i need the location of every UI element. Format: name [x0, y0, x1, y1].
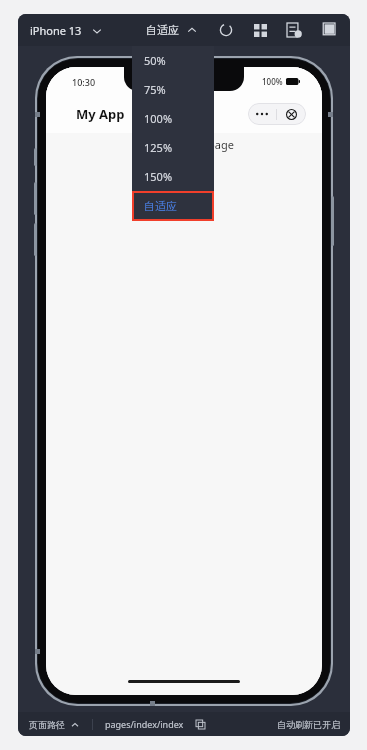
button[interactable]: 自适应 — [142, 19, 201, 41]
staticText: 页面路径 — [29, 719, 65, 730]
button[interactable]: Copy path — [192, 716, 208, 732]
staticText: My App — [76, 105, 125, 123]
staticText: 100% — [262, 76, 283, 87]
staticText: 150% — [144, 169, 173, 184]
button[interactable]: Grid layout — [246, 16, 274, 44]
staticText: 自动刷新已开启 — [277, 719, 340, 730]
button[interactable]: iPhone 13 — [26, 19, 106, 42]
staticText: 75% — [144, 82, 166, 97]
button[interactable]: 75% — [132, 75, 214, 104]
button[interactable]: 125% — [132, 133, 214, 162]
staticText: 125% — [144, 140, 173, 155]
staticText: 50% — [144, 53, 166, 68]
staticText: this is a blank page — [135, 137, 234, 152]
button[interactable]: 50% — [132, 46, 214, 75]
staticText: 100% — [144, 111, 173, 126]
staticText: 自适应 — [144, 199, 177, 213]
staticText: 自适应 — [146, 23, 179, 37]
button[interactable]: Page settings — [280, 16, 308, 44]
button[interactable]: Windows — [314, 16, 342, 44]
staticText: pages/index/index — [105, 718, 184, 730]
button[interactable]: 页面路径 — [26, 716, 82, 733]
button[interactable]: 自适应 — [132, 191, 214, 221]
button[interactable]: More — [248, 103, 276, 125]
staticText: 10:30 — [72, 76, 96, 88]
button[interactable]: 100% — [132, 104, 214, 133]
button[interactable]: Refresh — [212, 16, 240, 44]
button[interactable]: Close — [277, 103, 306, 125]
staticText: iPhone 13 — [30, 23, 82, 38]
button[interactable]: 150% — [132, 162, 214, 191]
